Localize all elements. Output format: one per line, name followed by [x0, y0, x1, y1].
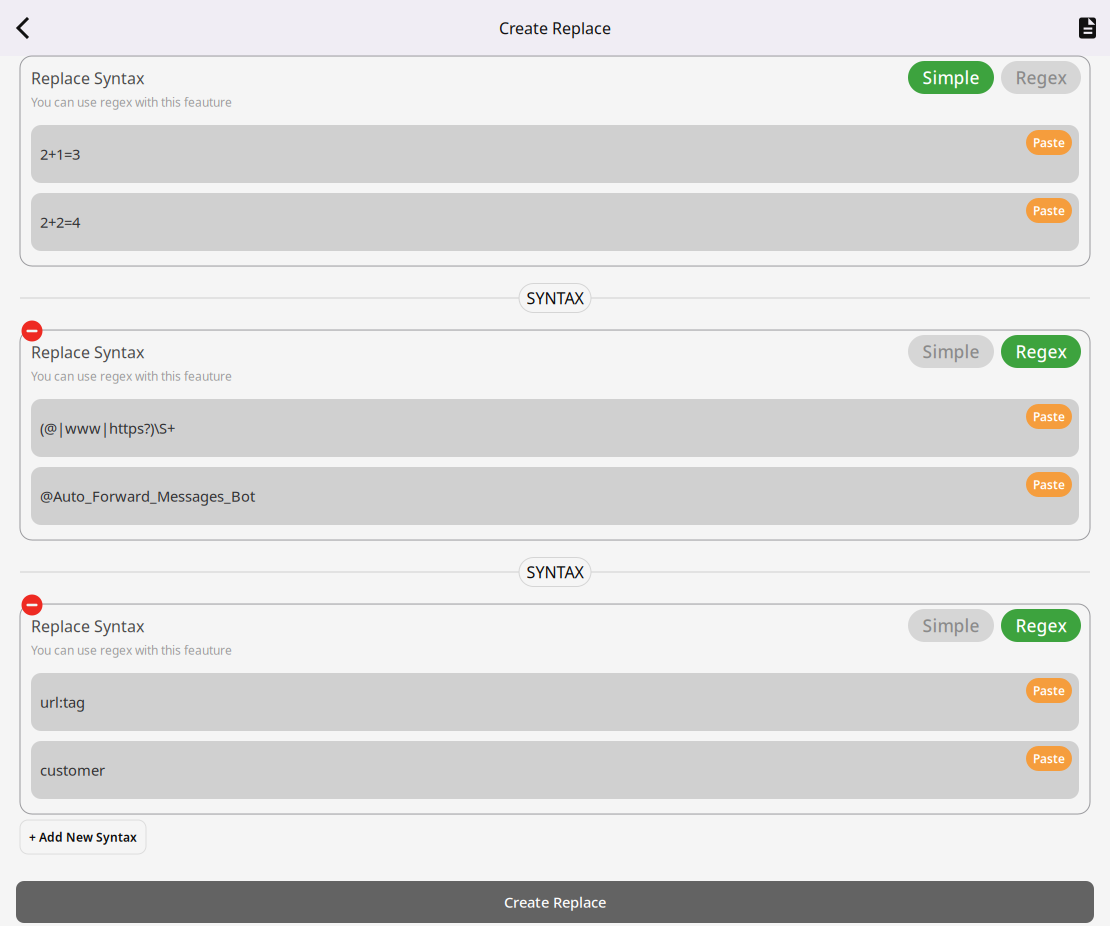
staticText: Paste — [1033, 682, 1065, 698]
staticText: You can use regex with this feauture — [31, 642, 232, 658]
button[interactable]: Paste — [1026, 678, 1072, 703]
staticText: Replace Syntax — [31, 615, 144, 637]
button[interactable]: Paste — [1026, 746, 1072, 771]
staticText: @Auto_Forward_Messages_Bot — [40, 486, 255, 506]
staticText: Paste — [1033, 134, 1065, 150]
staticText: Replace Syntax — [31, 67, 144, 89]
button[interactable]: Simple — [908, 61, 994, 94]
button[interactable]: Paste — [1026, 472, 1072, 497]
button[interactable]: Paste — [1026, 198, 1072, 223]
staticText: Simple — [922, 340, 979, 363]
staticText: Simple — [922, 66, 979, 89]
staticText: Paste — [1033, 202, 1065, 218]
staticText: Replace Syntax — [31, 341, 144, 363]
staticText: You can use regex with this feauture — [31, 368, 232, 384]
staticText: You can use regex with this feauture — [31, 94, 232, 110]
staticText: Paste — [1033, 476, 1065, 492]
staticText: customer — [40, 760, 105, 780]
staticText: SYNTAX — [526, 561, 583, 583]
staticText: Regex — [1015, 340, 1066, 363]
staticText: + Add New Syntax — [29, 829, 137, 845]
button[interactable]: Create Replace — [16, 881, 1094, 923]
staticText: Paste — [1033, 750, 1065, 766]
button[interactable]: Simple — [908, 609, 994, 642]
button[interactable]: Paste — [1026, 130, 1072, 155]
staticText: 2+2=4 — [40, 212, 80, 232]
button[interactable]: Regex — [1001, 335, 1081, 368]
staticText: Regex — [1015, 614, 1066, 637]
staticText: Paste — [1033, 408, 1065, 424]
staticText: 2+1=3 — [40, 144, 80, 164]
button[interactable]: Regex — [1001, 609, 1081, 642]
button[interactable]: Back — [12, 12, 38, 44]
staticText: (@|www|https?)\S+ — [40, 418, 175, 438]
staticText: SYNTAX — [526, 287, 583, 309]
button[interactable]: Simple — [908, 335, 994, 368]
staticText: Regex — [1015, 66, 1066, 89]
button[interactable]: + Add New Syntax — [20, 820, 146, 854]
staticText: Simple — [922, 614, 979, 637]
staticText: Create Replace — [504, 892, 606, 912]
button[interactable]: Template — [1077, 12, 1098, 43]
staticText: url:tag — [40, 692, 85, 712]
button[interactable]: Paste — [1026, 404, 1072, 429]
button[interactable]: Regex — [1001, 61, 1081, 94]
staticText: Create Replace — [499, 17, 611, 39]
